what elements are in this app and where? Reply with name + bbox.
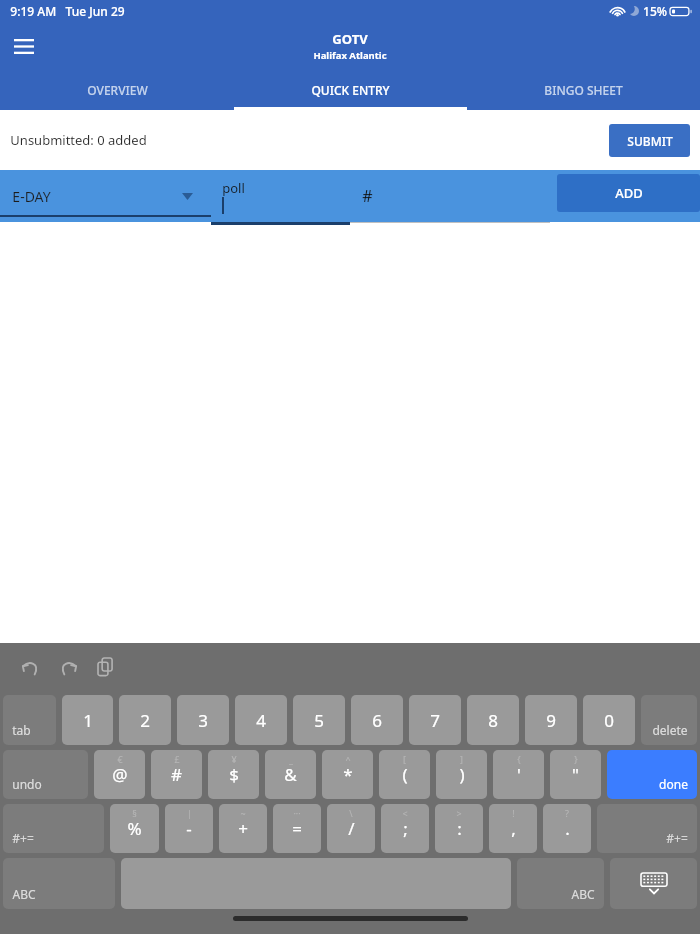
button[interactable]: 9: [525, 695, 577, 745]
staticText: OVERVIEW: [87, 82, 148, 98]
button[interactable]: ABC: [3, 858, 115, 909]
button[interactable]: ;: [381, 804, 429, 853]
button[interactable]: 0: [583, 695, 635, 745]
button[interactable]: (: [379, 750, 430, 799]
staticText: ": [572, 763, 579, 786]
button[interactable]: SUBMIT: [609, 124, 690, 157]
staticText: ): [459, 763, 465, 786]
staticText: 8: [488, 709, 498, 732]
staticText: delete: [652, 722, 688, 738]
staticText: E-DAY: [12, 187, 51, 206]
button[interactable]: undo: [3, 750, 88, 799]
staticText: 7: [430, 709, 440, 732]
staticText: GOTV: [332, 30, 368, 48]
staticText: _: [289, 753, 293, 765]
staticText: ~: [240, 807, 246, 819]
staticText: [: [403, 753, 406, 765]
staticText: ABC: [571, 886, 595, 902]
button[interactable]: #: [151, 750, 202, 799]
staticText: #: [362, 185, 373, 207]
button[interactable]: /: [327, 804, 375, 853]
staticText: }: [574, 753, 578, 765]
button[interactable]: E-DAY: [0, 170, 211, 222]
button[interactable]: .: [543, 804, 591, 853]
button[interactable]: +: [219, 804, 267, 853]
button[interactable]: #+=: [3, 804, 104, 853]
button[interactable]: 5: [293, 695, 345, 745]
staticText: |: [187, 807, 192, 819]
button[interactable]: ADD: [557, 174, 700, 212]
staticText: tab: [12, 722, 31, 738]
button[interactable]: ): [436, 750, 487, 799]
staticText: ,: [511, 817, 516, 840]
button[interactable]: Redo: [52, 651, 84, 683]
staticText: 5: [314, 709, 324, 732]
button[interactable]: #: [350, 170, 557, 222]
staticText: £: [174, 753, 180, 765]
staticText: =: [292, 817, 302, 840]
staticText: 3: [198, 709, 208, 732]
button[interactable]: *: [322, 750, 373, 799]
staticText: *: [343, 763, 353, 786]
staticText: poll: [222, 179, 245, 197]
button[interactable]: 8: [467, 695, 519, 745]
button[interactable]: &: [265, 750, 316, 799]
button[interactable]: -: [165, 804, 213, 853]
button[interactable]: 2: [119, 695, 171, 745]
staticText: ;: [403, 817, 408, 840]
button[interactable]: Undo: [14, 651, 46, 683]
button[interactable]: Hide keyboard: [610, 858, 697, 909]
staticText: 0: [604, 709, 614, 732]
button[interactable]: %: [110, 804, 159, 853]
button[interactable]: tab: [3, 695, 56, 745]
staticText: #+=: [666, 830, 688, 846]
staticText: :: [457, 817, 462, 840]
staticText: #: [171, 763, 182, 786]
button[interactable]: =: [273, 804, 321, 853]
button[interactable]: done: [607, 750, 697, 799]
staticText: $: [229, 763, 239, 786]
staticText: ': [517, 763, 521, 786]
staticText: @: [112, 763, 128, 786]
button[interactable]: 3: [177, 695, 229, 745]
staticText: ?: [565, 807, 569, 819]
button[interactable]: :: [435, 804, 483, 853]
staticText: SUBMIT: [627, 133, 673, 149]
staticText: §: [132, 807, 137, 819]
button[interactable]: $: [208, 750, 259, 799]
staticText: done: [659, 776, 688, 792]
button[interactable]: delete: [641, 695, 697, 745]
button[interactable]: poll: [211, 170, 350, 222]
button[interactable]: BINGO SHEET: [467, 70, 700, 110]
button[interactable]: ABC: [517, 858, 604, 909]
button[interactable]: Paste: [90, 651, 122, 683]
button[interactable]: ": [550, 750, 601, 799]
button[interactable]: Open navigation menu: [8, 30, 40, 62]
staticText: ADD: [615, 184, 643, 202]
staticText: BINGO SHEET: [544, 82, 623, 98]
staticText: 2: [140, 709, 150, 732]
button[interactable]: 7: [409, 695, 461, 745]
staticText: %: [127, 817, 142, 840]
staticText: <: [402, 807, 408, 819]
staticText: \: [349, 807, 353, 819]
staticText: €: [117, 753, 123, 765]
button[interactable]: 1: [62, 695, 113, 745]
staticText: ABC: [12, 886, 36, 902]
button[interactable]: ': [493, 750, 544, 799]
button[interactable]: OVERVIEW: [0, 70, 234, 110]
button[interactable]: 4: [235, 695, 287, 745]
button[interactable]: ,: [489, 804, 537, 853]
button[interactable]: QUICK ENTRY: [234, 70, 467, 110]
button[interactable]: #+=: [597, 804, 697, 853]
staticText: -: [186, 817, 192, 840]
staticText: &: [284, 763, 297, 786]
button[interactable]: 6: [351, 695, 403, 745]
staticText: Halifax Atlantic: [313, 49, 387, 62]
staticText: undo: [12, 776, 42, 792]
staticText: Unsubmitted: 0 added: [10, 131, 147, 149]
staticText: ···: [293, 807, 301, 819]
staticText: .: [565, 817, 570, 840]
button[interactable]: @: [94, 750, 145, 799]
